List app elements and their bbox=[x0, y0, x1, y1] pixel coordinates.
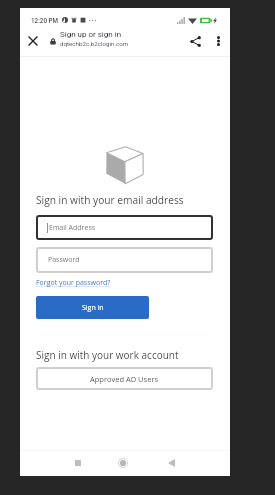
staticText: Sign in with your work account bbox=[36, 348, 179, 362]
staticText: Password bbox=[48, 255, 80, 265]
button[interactable]: More options bbox=[208, 31, 228, 51]
button[interactable]: Recent apps bbox=[68, 453, 88, 473]
button[interactable]: Forgot your password? bbox=[36, 278, 111, 288]
staticText: Forgot your password? bbox=[36, 278, 111, 288]
staticText: Email Address bbox=[49, 223, 96, 233]
staticText: 12:20 PM bbox=[31, 17, 59, 24]
staticText: Sign in with your email address bbox=[36, 193, 184, 207]
button[interactable]: Sign in bbox=[36, 296, 149, 319]
staticText: Sign up or sign in bbox=[60, 30, 122, 39]
button[interactable]: Back bbox=[161, 453, 181, 473]
button[interactable]: Password bbox=[36, 247, 213, 273]
button[interactable]: Email Address bbox=[36, 215, 213, 240]
button[interactable]: Close bbox=[23, 31, 43, 51]
staticText: dqtechb2c.b2clogin.com bbox=[60, 40, 129, 47]
button[interactable]: Home bbox=[113, 453, 133, 473]
button[interactable]: Share bbox=[184, 30, 206, 52]
staticText: Sign in bbox=[82, 303, 104, 313]
staticText: Approved AD Users bbox=[90, 374, 159, 384]
button[interactable]: Approved AD Users bbox=[36, 367, 213, 390]
